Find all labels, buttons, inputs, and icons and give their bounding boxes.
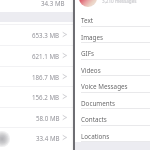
button[interactable]: 653.3 MB	[0, 24, 75, 45]
staticText: GIFs	[81, 49, 95, 58]
staticText: Images	[81, 33, 103, 42]
staticText: 33.4 MB	[36, 134, 60, 142]
staticText: Contacts	[81, 115, 107, 124]
button[interactable]: GIFs	[75, 43, 150, 60]
staticText: 156.2 MB	[32, 93, 60, 101]
button[interactable]: Voice Messages	[75, 76, 150, 93]
button[interactable]: Images	[75, 27, 150, 44]
staticText: 621.1 MB	[32, 52, 60, 60]
staticText: Voice Messages	[81, 82, 128, 91]
staticText: 58.0 MB	[36, 114, 60, 122]
staticText: 653.3 MB	[32, 31, 60, 39]
button[interactable]: 186.7 MB	[0, 66, 75, 87]
staticText: 34.3 MB	[41, 0, 65, 7]
button[interactable]: 58.0 MB	[0, 107, 75, 128]
button[interactable]: 621.1 MB	[0, 45, 75, 66]
button[interactable]: Videos	[75, 60, 150, 77]
button[interactable]: 33.4 MB	[0, 127, 75, 148]
staticText: Videos	[81, 66, 101, 75]
staticText: Documents	[81, 99, 115, 108]
button[interactable]: Text	[75, 10, 150, 27]
staticText: Locations	[81, 132, 110, 141]
button[interactable]: 34.3 MB	[0, 0, 75, 13]
button[interactable]: Locations	[75, 126, 150, 143]
staticText: Text	[81, 16, 94, 25]
button[interactable]: Contacts	[75, 109, 150, 126]
staticText: 186.7 MB	[32, 73, 60, 81]
button[interactable]: Documents	[75, 93, 150, 110]
button[interactable]: 156.2 MB	[0, 86, 75, 107]
staticText: 3,210 messages	[102, 0, 137, 4]
